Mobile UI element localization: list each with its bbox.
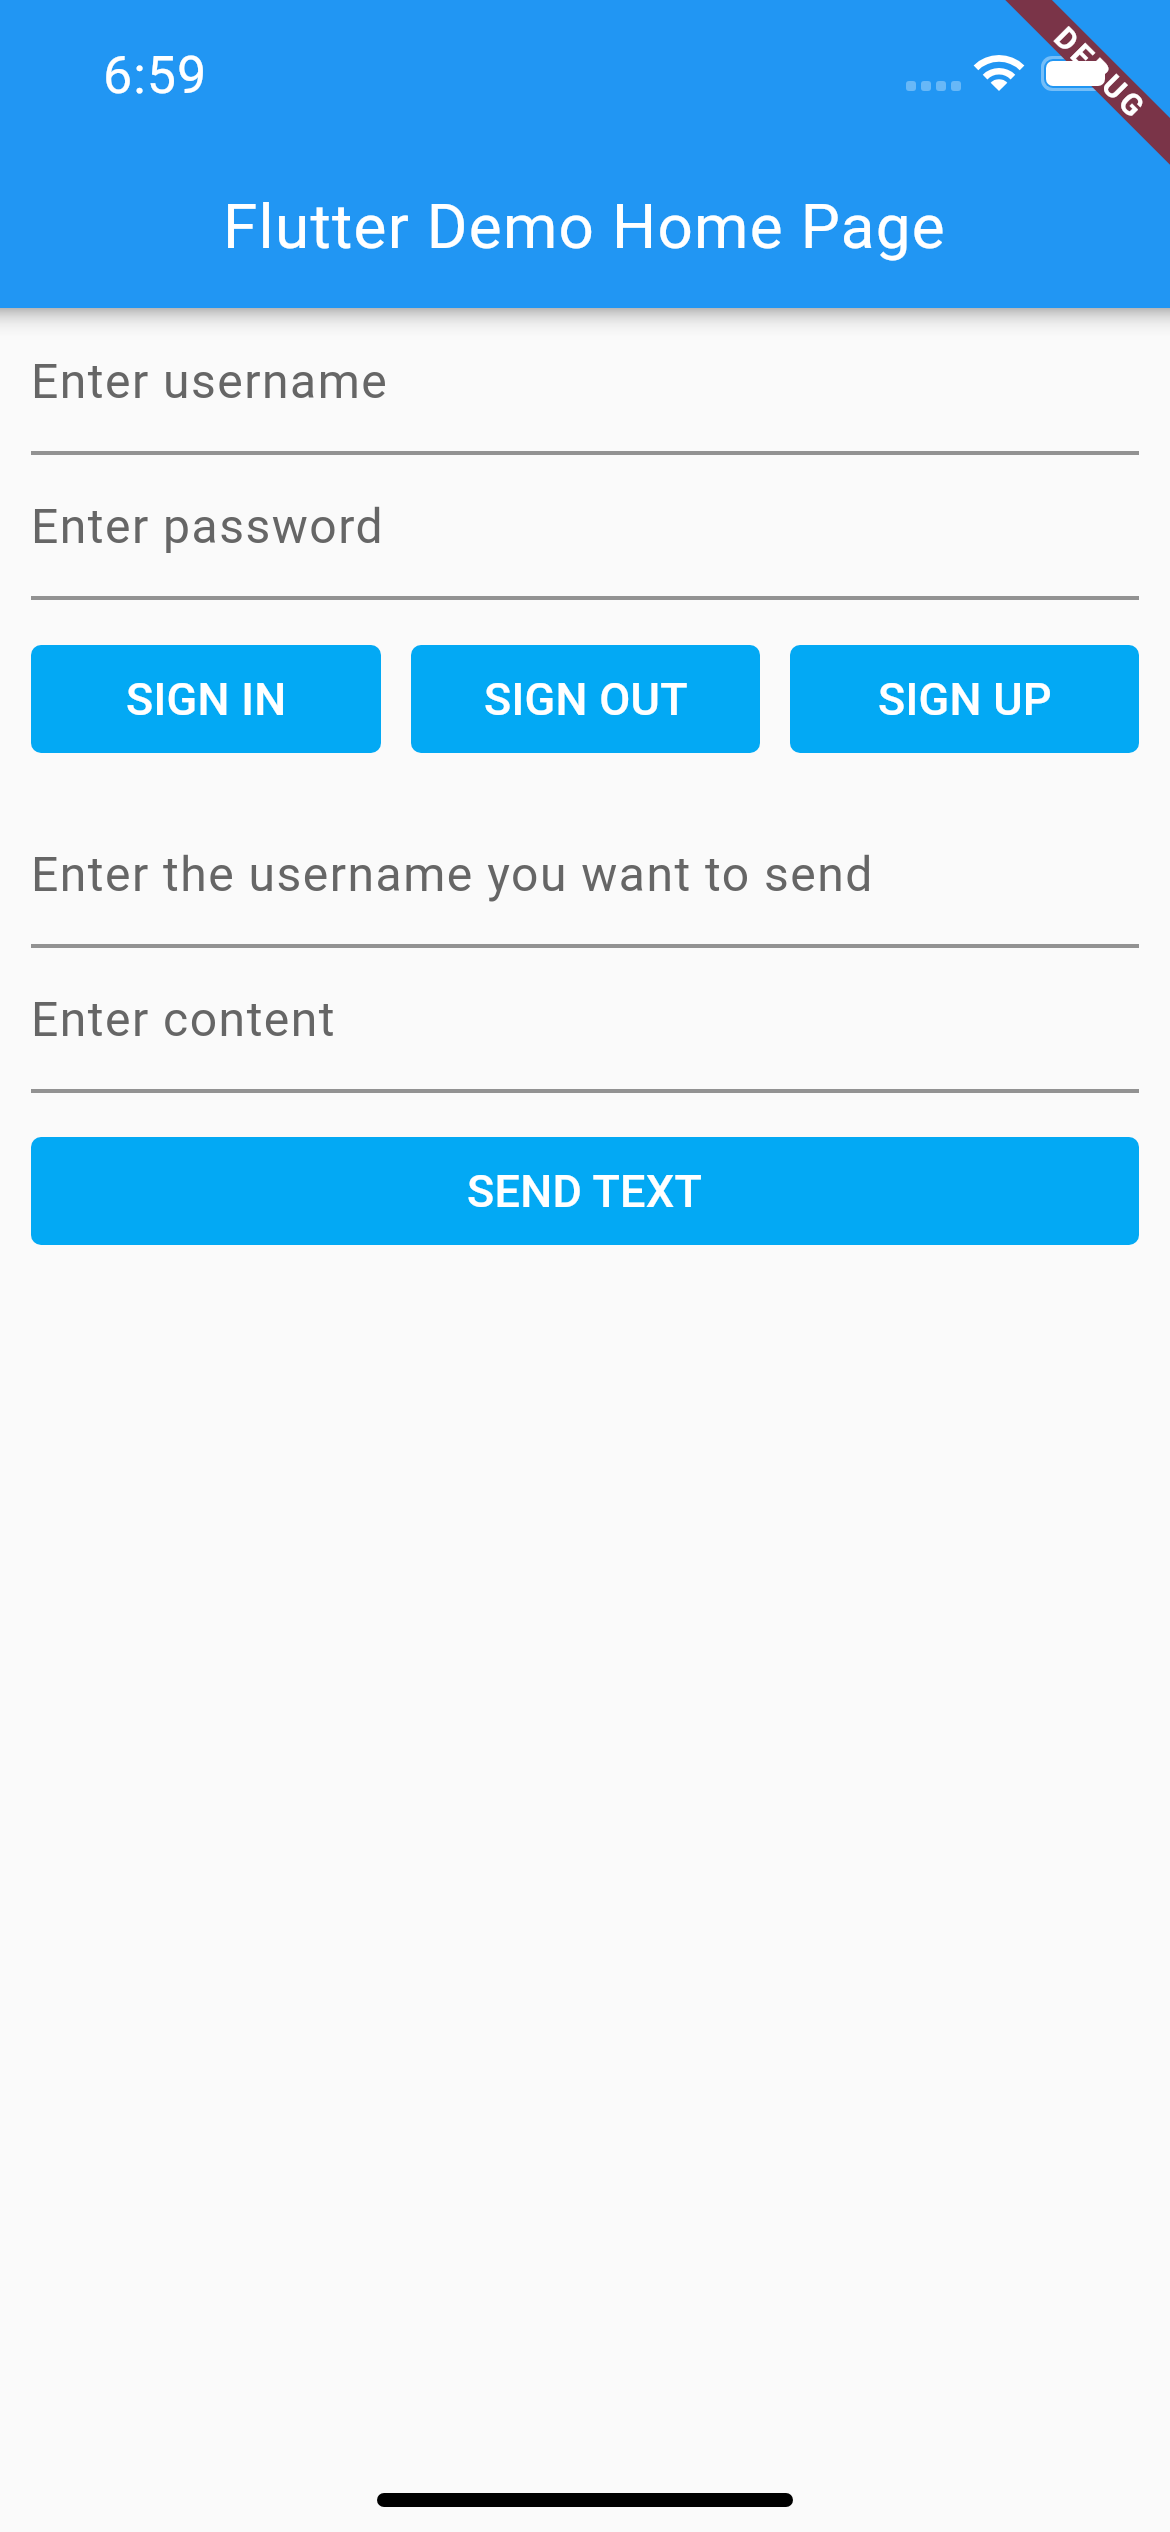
- staticText: Enter username: [31, 353, 389, 409]
- staticText: Enter content: [31, 991, 336, 1047]
- button[interactable]: Enter username: [31, 308, 1139, 453]
- staticText: SEND TEXT: [467, 1165, 703, 1218]
- button[interactable]: SIGN OUT: [411, 645, 760, 753]
- button[interactable]: SIGN UP: [790, 645, 1139, 753]
- staticText: SIGN UP: [878, 673, 1052, 726]
- button[interactable]: Enter password: [31, 453, 1139, 598]
- other: Status bar: [0, 0, 1170, 150]
- staticText: Enter the username you want to send: [31, 846, 874, 902]
- button[interactable]: SIGN IN: [31, 645, 381, 753]
- staticText: SIGN OUT: [484, 673, 688, 726]
- staticText: 6:59: [103, 45, 208, 106]
- staticText: SIGN IN: [126, 673, 287, 726]
- button[interactable]: Enter the username you want to send: [31, 801, 1139, 946]
- staticText: DEBUG: [1047, 20, 1154, 127]
- button[interactable]: SEND TEXT: [31, 1137, 1139, 1245]
- staticText: Flutter Demo Home Page: [223, 190, 947, 263]
- button[interactable]: Enter content: [31, 946, 1139, 1091]
- staticText: Enter password: [31, 498, 385, 554]
